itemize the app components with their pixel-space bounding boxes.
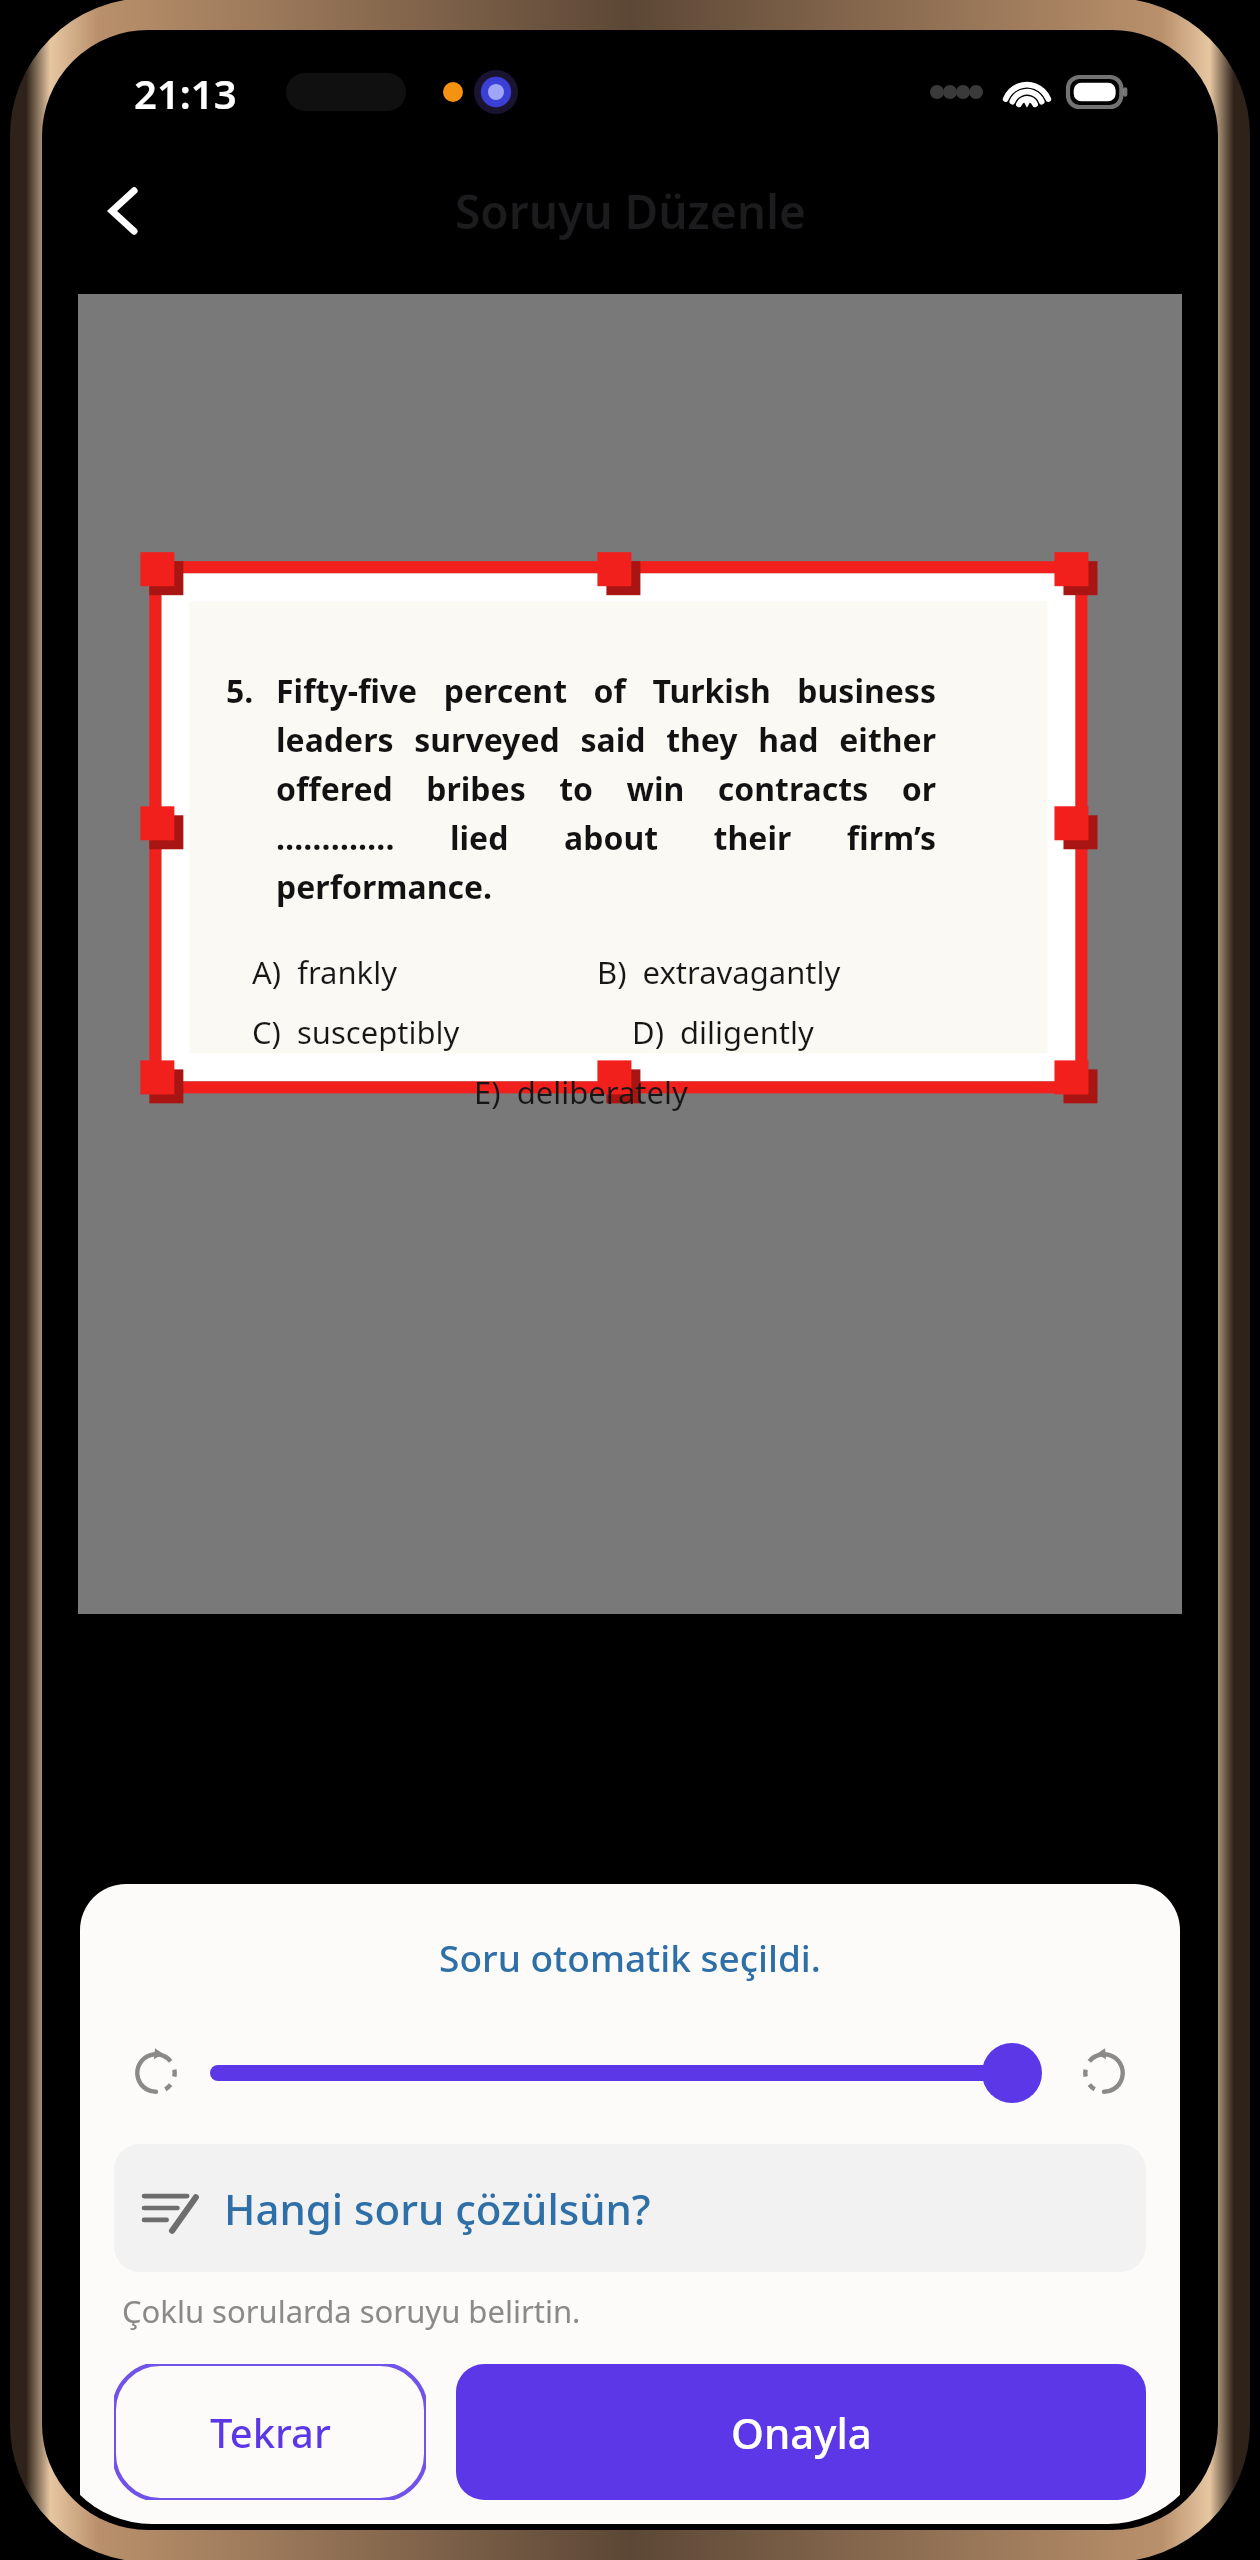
staticText: C) susceptibly — [252, 1011, 460, 1053]
staticText: 21:13 — [134, 66, 237, 120]
button[interactable]: Geri — [72, 159, 176, 263]
button[interactable]: Sola döndür — [116, 2033, 196, 2113]
staticText: Fifty-five percent of Turkish business l… — [276, 669, 936, 909]
staticText: A) frankly — [252, 951, 397, 993]
staticText: B) extravagantly — [597, 951, 841, 993]
staticText: Hangi soru çözülsün? — [224, 2180, 651, 2237]
staticText: Tekrar — [210, 2405, 331, 2459]
staticText: Onayla — [731, 2404, 872, 2461]
staticText: Soruyu Düzenle — [455, 180, 806, 243]
button[interactable] — [218, 2038, 1042, 2108]
button[interactable]: Tekrar — [114, 2364, 426, 2500]
staticText: 5. — [226, 669, 254, 713]
button[interactable]: Sağa döndür — [1064, 2033, 1144, 2113]
staticText: E) deliberately — [474, 1071, 688, 1113]
staticText: D) diligently — [632, 1011, 814, 1053]
button[interactable]: Hangi soru çözülsün? — [114, 2144, 1146, 2272]
staticText: Çoklu sorularda soruyu belirtin. — [122, 2290, 581, 2332]
button[interactable]: Onayla — [456, 2364, 1146, 2500]
staticText: Soru otomatik seçildi. — [80, 1932, 1180, 1982]
